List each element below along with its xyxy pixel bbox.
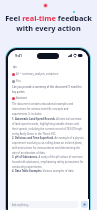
staticText: 9:41 (15, 53, 23, 58)
staticText: Feel real-time feedback with every actio… (0, 13, 97, 33)
staticText: Can you provide a summary of this docume… (12, 85, 84, 93)
staticText: 2. Delicious and Time Superfood. An exam… (12, 136, 84, 154)
staticText: Ask anything... (12, 203, 30, 207)
staticText: 4. Data Table Examples. Various examples… (12, 169, 84, 173)
button[interactable]: Send (81, 201, 88, 208)
staticText: AI • summary, analysis, extraction (16, 72, 59, 76)
button[interactable]: Back (12, 64, 17, 69)
staticText: Assistant (16, 96, 27, 100)
staticText: The document contains educational exampl… (12, 102, 84, 115)
button[interactable]: Ask anything... (9, 201, 79, 208)
staticText: You (16, 79, 21, 83)
staticText: 3. pH of Substances. A study of the pH v… (12, 155, 84, 168)
staticText: 1. Automatic Land Speed Records. A histo… (12, 117, 84, 135)
